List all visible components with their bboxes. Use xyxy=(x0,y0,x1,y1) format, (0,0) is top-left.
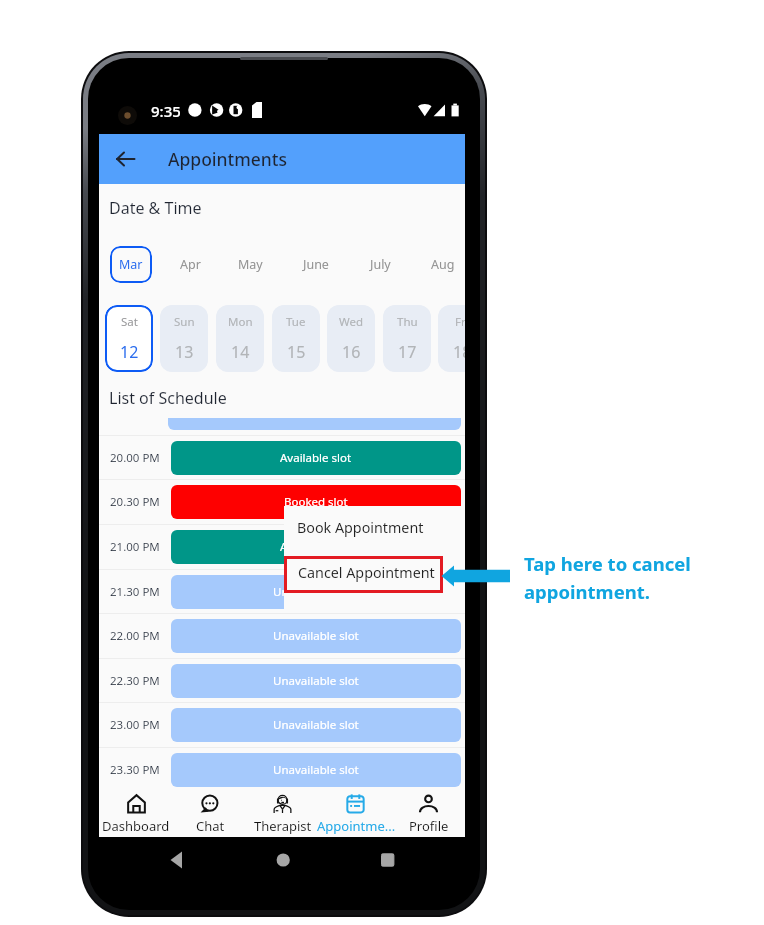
button[interactable]: Fri xyxy=(438,305,465,372)
button[interactable]: 22.30 PM xyxy=(99,659,465,703)
staticText: Therapist xyxy=(254,817,312,835)
button[interactable]: Unavailable slot xyxy=(171,664,461,698)
button[interactable]: Cancel Appointment xyxy=(284,556,443,593)
staticText: Cancel Appointment xyxy=(298,563,435,582)
staticText: Unavailable slot xyxy=(273,762,359,778)
button[interactable]: Apr xyxy=(166,246,214,283)
button[interactable]: Wed xyxy=(327,305,375,372)
staticText: 14 xyxy=(231,341,250,363)
staticText: Chat xyxy=(196,817,225,835)
staticText: 23.00 PM xyxy=(110,717,160,733)
staticText: July xyxy=(370,256,391,273)
staticText: Mon xyxy=(228,314,253,330)
staticText: June xyxy=(303,256,329,273)
staticText: 20.00 PM xyxy=(110,450,160,466)
staticText: 12 xyxy=(120,341,139,363)
button[interactable]: Profile xyxy=(392,787,465,836)
staticText: Unavailable slot xyxy=(273,584,359,600)
button[interactable]: Unavailable slot xyxy=(171,575,461,609)
staticText: List of Schedule xyxy=(109,387,227,409)
button[interactable]: Available slot xyxy=(171,441,461,475)
staticText: Unavailable slot xyxy=(273,673,359,689)
button[interactable]: Back xyxy=(99,134,151,184)
staticText: 15 xyxy=(287,341,306,363)
staticText: 23.30 PM xyxy=(110,762,160,778)
button[interactable]: Available slot xyxy=(171,530,461,564)
staticText: Available slot xyxy=(280,539,352,555)
staticText: Book Appointment xyxy=(297,518,424,537)
staticText: 22.30 PM xyxy=(110,673,160,689)
button[interactable]: 21.30 PM xyxy=(99,570,465,614)
staticText: Unavailable slot xyxy=(273,628,359,644)
button[interactable]: Unavailable slot xyxy=(171,753,461,787)
staticText: 18 xyxy=(453,341,465,363)
staticText: Booked slot xyxy=(284,494,348,510)
staticText: Unavailable slot xyxy=(273,717,359,733)
button[interactable]: 21.00 PM xyxy=(99,525,465,569)
staticText: Available slot xyxy=(280,450,352,466)
button[interactable]: Appointme... xyxy=(319,787,392,836)
staticText: Sat xyxy=(121,314,138,330)
button[interactable]: Mon xyxy=(216,305,264,372)
staticText: Tap here to cancel appointment. xyxy=(524,551,691,605)
staticText: 17 xyxy=(398,341,417,363)
button[interactable]: June xyxy=(292,246,340,283)
button[interactable]: Mar xyxy=(110,246,152,283)
staticText: Mar xyxy=(119,256,143,273)
staticText: Sun xyxy=(174,314,195,330)
staticText: Appointme... xyxy=(317,817,396,835)
button[interactable]: May xyxy=(226,246,274,283)
staticText: 21.30 PM xyxy=(110,584,160,600)
staticText: 13 xyxy=(175,341,194,363)
staticText: Date & Time xyxy=(109,197,202,219)
button[interactable]: 22.00 PM xyxy=(99,614,465,658)
staticText: Dashboard xyxy=(102,817,170,835)
staticText: 22.00 PM xyxy=(110,628,160,644)
staticText: Aug xyxy=(431,256,455,273)
button[interactable]: Unavailable slot xyxy=(171,708,461,742)
staticText: Profile xyxy=(409,817,449,835)
staticText: 9:35 xyxy=(151,101,181,121)
button[interactable]: 20.30 PM xyxy=(99,480,465,524)
staticText: Fri xyxy=(455,314,465,330)
staticText: Thu xyxy=(397,314,418,330)
staticText: Wed xyxy=(339,314,364,330)
button[interactable]: Booked slot xyxy=(171,485,461,519)
button[interactable]: Sun xyxy=(160,305,208,372)
button[interactable]: Chat xyxy=(173,787,246,836)
staticText: 16 xyxy=(342,341,361,363)
button[interactable]: Book Appointment xyxy=(284,506,465,549)
button[interactable]: Tue xyxy=(272,305,320,372)
staticText: Apr xyxy=(180,256,201,273)
button[interactable]: Aug xyxy=(419,246,465,283)
button[interactable]: Therapist xyxy=(246,787,319,836)
staticText: 20.30 PM xyxy=(110,494,160,510)
button[interactable]: July xyxy=(356,246,404,283)
button[interactable]: 20.00 PM xyxy=(99,436,465,480)
staticText: Appointments xyxy=(168,147,288,171)
button[interactable]: Dashboard xyxy=(99,787,173,836)
staticText: Tue xyxy=(286,314,306,330)
button[interactable]: Unavailable slot xyxy=(171,619,461,653)
button[interactable]: Sat xyxy=(105,305,153,372)
button[interactable]: 23.30 PM xyxy=(99,748,465,787)
staticText: May xyxy=(238,256,263,273)
button[interactable]: 23.00 PM xyxy=(99,703,465,747)
staticText: 21.00 PM xyxy=(110,539,160,555)
button[interactable]: Thu xyxy=(383,305,431,372)
